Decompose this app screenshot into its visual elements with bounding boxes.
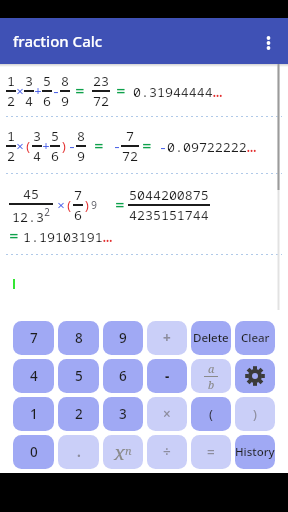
staticText: 9 <box>91 198 97 212</box>
button[interactable]: Clear <box>235 321 275 355</box>
staticText: 2 <box>75 405 83 423</box>
button[interactable]: + <box>147 321 187 355</box>
staticText: × <box>57 196 65 214</box>
button[interactable]: ) <box>235 397 275 431</box>
staticText: 4 <box>25 92 33 110</box>
staticText: 8 <box>61 72 69 90</box>
staticText: - <box>68 137 76 155</box>
staticText: + <box>42 137 50 155</box>
staticText: -0.09722222… <box>159 135 257 157</box>
staticText: 1.19103191… <box>23 225 113 247</box>
staticText: 72 <box>122 147 138 165</box>
staticText: 5 <box>43 72 51 90</box>
staticText: 4 <box>30 367 38 385</box>
staticText: a <box>208 361 215 376</box>
staticText: 72 <box>93 92 109 110</box>
button[interactable]: - <box>147 359 187 393</box>
staticText: 12.32 <box>12 205 50 225</box>
button[interactable]: ÷ <box>147 435 187 469</box>
staticText: = <box>142 135 152 157</box>
button[interactable] <box>264 26 278 56</box>
staticText: = <box>94 135 104 157</box>
staticText: 9 <box>61 92 69 110</box>
staticText: 8 <box>77 127 85 145</box>
staticText: - <box>165 367 170 385</box>
staticText: + <box>34 82 42 100</box>
staticText: 1 <box>30 405 38 423</box>
staticText: 6 <box>43 92 51 110</box>
staticText: = <box>207 443 215 461</box>
staticText: × <box>16 137 24 155</box>
staticText: 2 <box>7 147 15 165</box>
staticText: . <box>77 443 81 461</box>
staticText: 6 <box>119 367 127 385</box>
button[interactable]: ( <box>191 397 231 431</box>
staticText: 23 <box>93 72 109 90</box>
staticText: × <box>16 82 24 100</box>
staticText: xn <box>114 439 132 466</box>
staticText: = <box>116 80 126 102</box>
staticText: b <box>208 377 215 392</box>
button[interactable]: 8 <box>58 321 99 355</box>
staticText: 0 <box>30 443 38 461</box>
staticText: 7 <box>126 127 134 145</box>
button[interactable]: 2 <box>58 397 99 431</box>
staticText: 6 <box>51 147 59 165</box>
staticText: 45 <box>23 185 39 203</box>
button[interactable] <box>235 359 275 393</box>
staticText: ( <box>65 196 73 214</box>
staticText: Delete <box>193 330 229 346</box>
staticText: = <box>75 80 85 102</box>
staticText: Clear <box>241 330 270 346</box>
button[interactable]: . <box>58 435 99 469</box>
staticText: = <box>9 225 19 247</box>
button[interactable]: Delete <box>191 321 231 355</box>
staticText: - <box>52 82 60 100</box>
staticText: 9 <box>77 147 85 165</box>
staticText: 5 <box>75 367 83 385</box>
button[interactable]: a <box>191 359 231 393</box>
staticText: ( <box>24 137 32 155</box>
button[interactable]: 3 <box>103 397 143 431</box>
staticText: 7 <box>30 329 38 347</box>
staticText: 9 <box>119 329 127 347</box>
staticText: ) <box>83 196 91 214</box>
button[interactable]: 9 <box>103 321 143 355</box>
staticText: 3 <box>33 127 41 145</box>
button[interactable]: 6 <box>103 359 143 393</box>
button[interactable]: 7 <box>13 321 54 355</box>
staticText: 4235151744 <box>129 206 209 224</box>
staticText: + <box>163 329 171 347</box>
staticText: History <box>235 444 275 460</box>
button[interactable]: = <box>191 435 231 469</box>
button[interactable]: 4 <box>13 359 54 393</box>
staticText: 3 <box>25 72 33 90</box>
staticText: 1 <box>7 127 15 145</box>
staticText: ) <box>253 405 257 423</box>
staticText: ÷ <box>163 443 171 461</box>
staticText: ( <box>209 405 213 423</box>
staticText: 2 <box>7 92 15 110</box>
button[interactable]: xn <box>103 435 143 469</box>
staticText: 7 <box>74 186 82 204</box>
button[interactable]: 1 <box>13 397 54 431</box>
staticText: = <box>115 194 125 216</box>
staticText: 8 <box>75 329 83 347</box>
staticText: ) <box>60 137 68 155</box>
staticText: 0.31944444… <box>133 80 223 102</box>
button[interactable]: × <box>147 397 187 431</box>
button[interactable]: History <box>235 435 275 469</box>
button[interactable]: 0 <box>13 435 54 469</box>
staticText: × <box>163 405 171 423</box>
staticText: fraction Calc <box>13 31 103 51</box>
staticText: 1 <box>7 72 15 90</box>
staticText: 4 <box>33 147 41 165</box>
staticText: 5044200875 <box>129 186 209 204</box>
staticText: - <box>113 137 121 155</box>
staticText: 5 <box>51 127 59 145</box>
staticText: 3 <box>119 405 127 423</box>
staticText: 6 <box>74 206 82 224</box>
button[interactable]: 5 <box>58 359 99 393</box>
